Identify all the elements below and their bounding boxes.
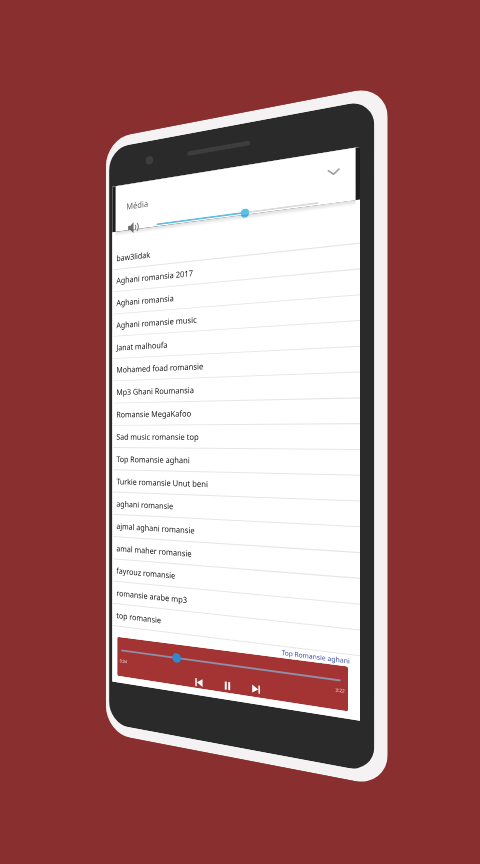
button[interactable]: Sad music romansie top — [112, 424, 360, 450]
button[interactable]: Volume — [125, 216, 143, 239]
staticText: Aghani romansia — [116, 292, 174, 309]
staticText: Janat malhoufa — [116, 339, 168, 353]
staticText: Aghani romansie music — [116, 314, 197, 331]
staticText: Mp3 Ghani Roumansia — [116, 384, 194, 398]
staticText: baw3lidak — [116, 249, 151, 264]
button[interactable]: aghani romansie — [112, 492, 360, 527]
staticText: 0:04 — [120, 658, 127, 664]
staticText: fayrouz romansie — [116, 565, 176, 582]
staticText: top romansie — [116, 610, 162, 626]
button[interactable]: Previous — [193, 675, 204, 689]
button[interactable]: Mp3 Ghani Roumansia — [112, 373, 360, 404]
button[interactable]: Aghani romansie music — [112, 295, 360, 337]
button[interactable]: Janat malhoufa — [112, 321, 360, 359]
button[interactable]: baw3lidak — [112, 218, 360, 270]
button[interactable]: amal maher romansie — [112, 537, 360, 579]
button[interactable]: Turkie romansie Unut beni — [112, 470, 360, 502]
staticText: Top Romansie aghani — [116, 454, 190, 466]
staticText: Mohamed foad romansie — [116, 360, 203, 376]
button[interactable]: Pause — [221, 678, 233, 693]
button[interactable]: romansie arabe mp3 — [112, 581, 360, 630]
staticText: Top Romansie aghani — [282, 648, 350, 666]
button[interactable]: Collapse — [323, 159, 344, 183]
button[interactable]: Mohamed foad romansie — [112, 347, 360, 381]
staticText: amal maher romansie — [116, 543, 192, 560]
staticText: ajmal aghani romansie — [116, 520, 195, 536]
staticText: Romansie MegaKafoo — [116, 408, 192, 420]
button[interactable]: top romansie — [112, 604, 360, 656]
staticText: Sad music romansie top — [116, 431, 199, 443]
button[interactable]: Top Romansie aghani — [112, 448, 360, 476]
button[interactable]: fayrouz romansie — [112, 559, 360, 605]
staticText: aghani romansie — [116, 498, 174, 512]
button[interactable]: Romansie MegaKafoo — [112, 398, 360, 426]
button[interactable]: Aghani romansia — [112, 269, 360, 315]
staticText: Aghani romansia 2017 — [116, 267, 193, 286]
staticText: Média — [126, 197, 149, 212]
button[interactable]: Aghani romansia 2017 — [112, 244, 360, 292]
button[interactable]: Next — [249, 681, 262, 696]
staticText: romansie arabe mp3 — [116, 587, 187, 606]
button[interactable]: ajmal aghani romansie — [112, 515, 360, 553]
staticText: Turkie romansie Unut beni — [116, 476, 208, 490]
staticText: 3:22 — [335, 686, 345, 694]
